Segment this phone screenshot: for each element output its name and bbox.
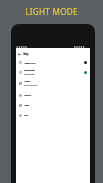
button[interactable]: Application Theme (16, 58, 90, 67)
staticText: Enable push notification (24, 69, 35, 72)
staticText: Clear cache and temp files (24, 84, 38, 87)
staticText: LIGHT MODE (0, 6, 103, 17)
button[interactable]: Back (16, 49, 90, 59)
button[interactable]: Change application theme (84, 61, 87, 64)
button[interactable]: Want traffic (16, 78, 90, 89)
button[interactable]: Toggle push notifications (84, 71, 87, 74)
button[interactable]: Enable push notification (16, 67, 90, 78)
staticText: Version (24, 114, 28, 117)
button[interactable]: Contact us (16, 101, 90, 110)
button[interactable]: Back (16, 49, 23, 59)
staticText: Receive new post alerts (24, 73, 35, 76)
staticText: Settings (23, 52, 29, 56)
button[interactable]: Policy privacy (16, 91, 90, 100)
staticText: Application Theme (24, 61, 36, 64)
staticText: Policy privacy (24, 94, 31, 97)
staticText: Want traffic (24, 80, 31, 83)
button[interactable]: Version (16, 111, 90, 120)
staticText: Contact us (24, 104, 29, 107)
